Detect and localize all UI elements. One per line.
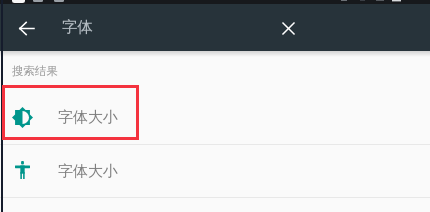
button[interactable]: 字体大小 — [0, 145, 430, 198]
button[interactable]: Back — [10, 12, 42, 44]
staticText: 字体 — [62, 17, 93, 37]
staticText: 字体大小 — [58, 108, 118, 127]
staticText: 字体大小 — [58, 162, 118, 181]
button[interactable]: 字体大小 — [0, 90, 430, 144]
staticText: 搜索结果 — [12, 64, 58, 78]
button[interactable]: Close — [272, 12, 304, 44]
